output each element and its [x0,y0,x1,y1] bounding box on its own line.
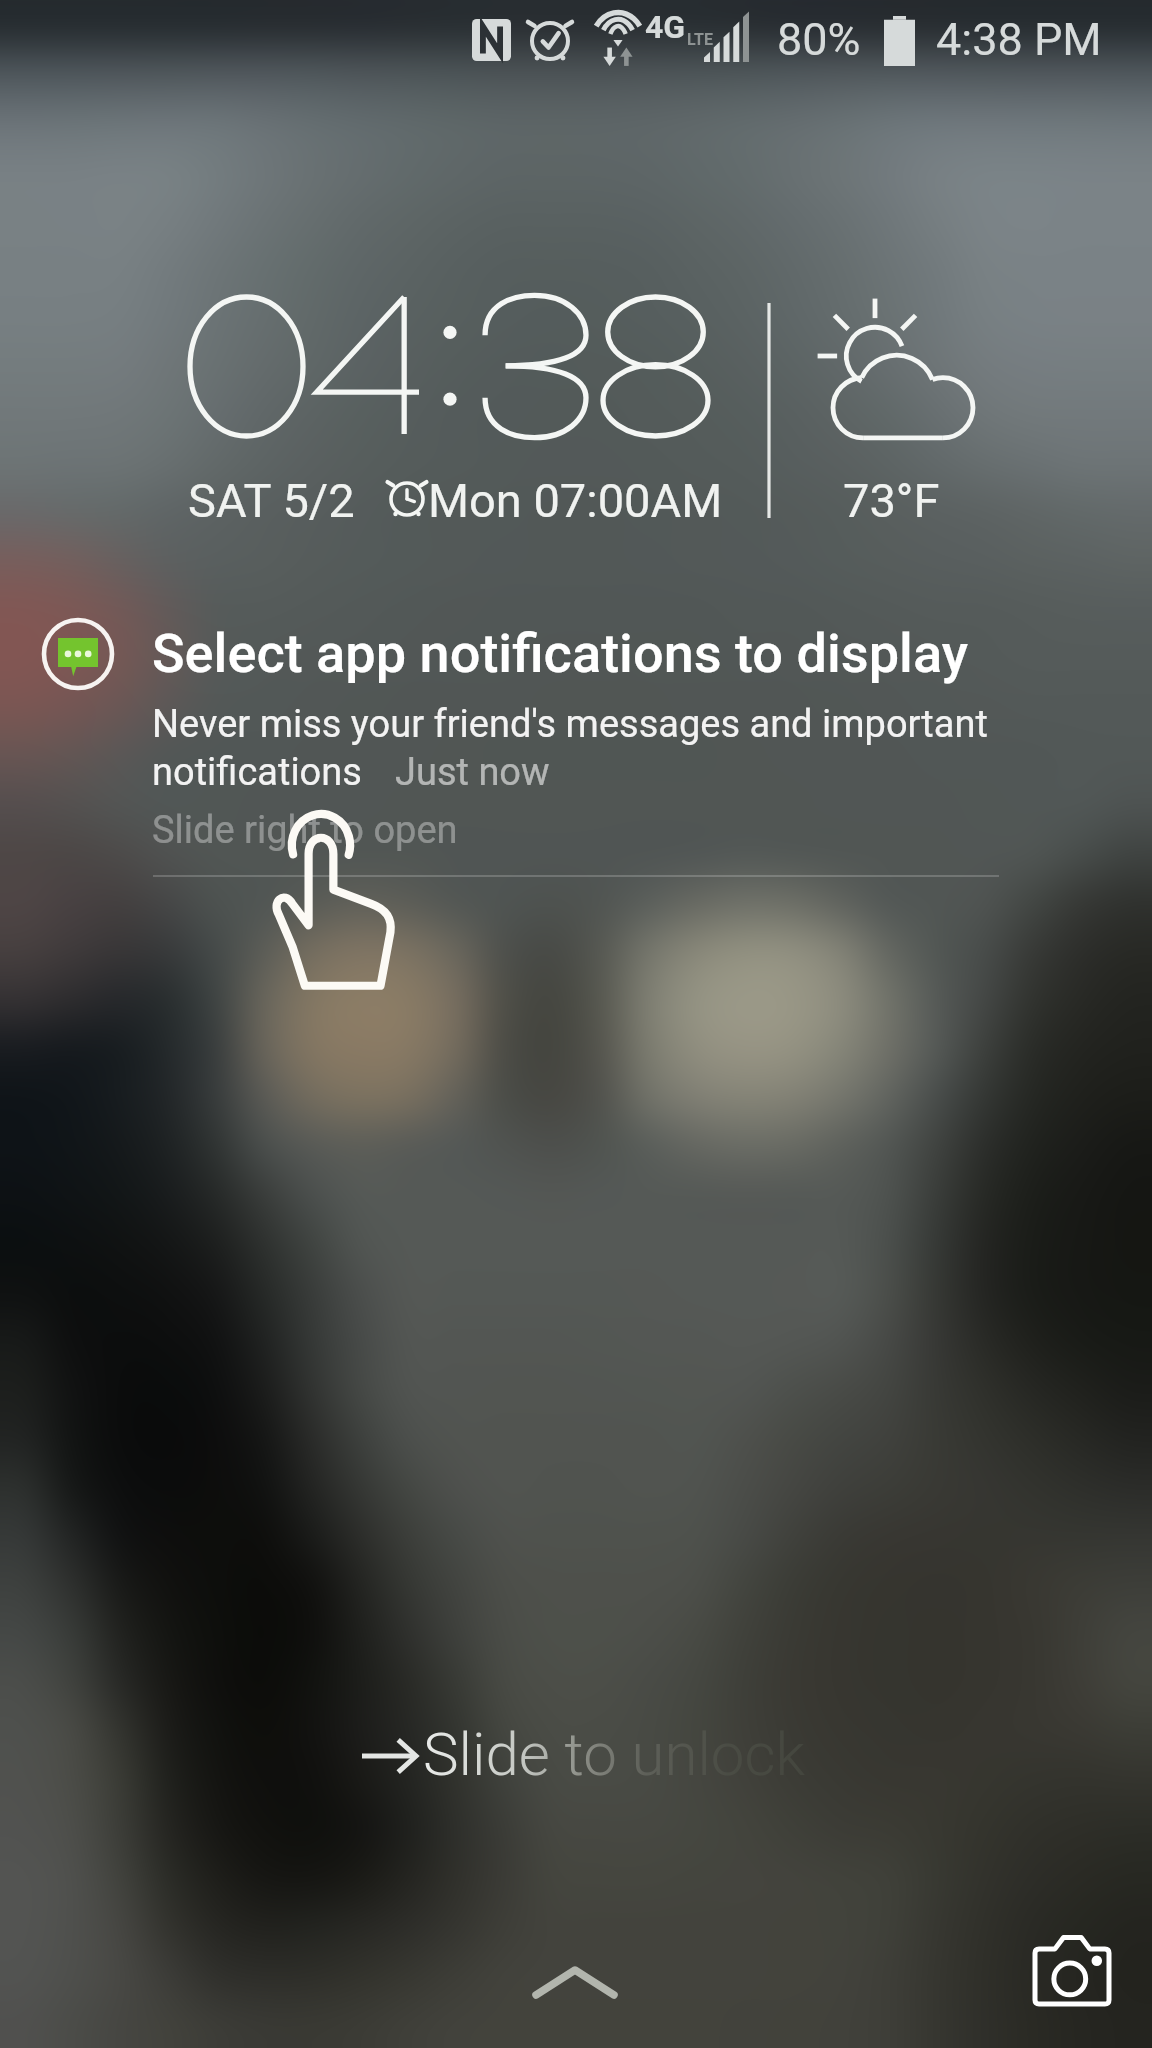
button[interactable]: Camera [0,0,1152,2048]
button[interactable]: Select app notifications to display [0,0,1152,2048]
button[interactable]: Slide to unlock [0,0,1152,2048]
other: Status bar [0,0,1152,2048]
button[interactable]: Open app shortcuts [0,0,1152,2048]
